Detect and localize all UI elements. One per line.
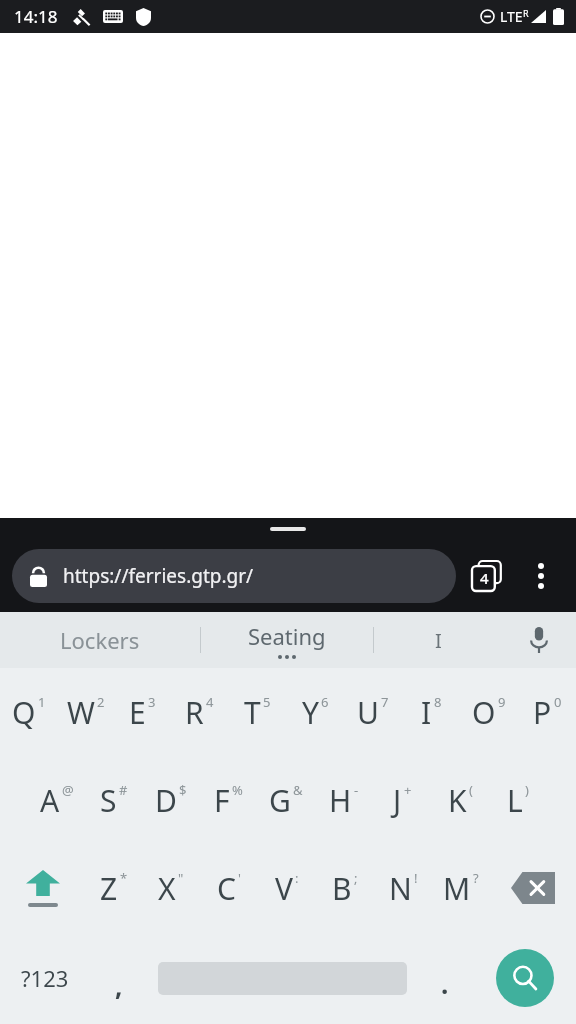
- staticText: 0: [554, 693, 562, 711]
- button[interactable]: H: [315, 756, 373, 844]
- staticText: A: [40, 780, 60, 821]
- staticText: Q: [12, 692, 36, 733]
- staticText: *: [120, 869, 128, 887]
- button[interactable]: D: [142, 756, 199, 844]
- staticText: https://ferries.gtp.gr/: [63, 563, 254, 589]
- button[interactable]: M: [432, 844, 490, 932]
- staticText: ?123: [21, 963, 69, 993]
- staticText: $: [179, 781, 187, 799]
- staticText: LTE: [500, 7, 523, 26]
- button[interactable]: U: [344, 668, 402, 756]
- staticText: X: [158, 868, 176, 909]
- button[interactable]: I: [374, 612, 502, 668]
- staticText: F: [214, 780, 230, 821]
- button[interactable]: F: [199, 756, 257, 844]
- staticText: &: [293, 781, 303, 799]
- button[interactable]: E: [114, 668, 171, 756]
- button[interactable]: J: [373, 756, 431, 844]
- button[interactable]: ?123: [0, 932, 90, 1024]
- button[interactable]: W: [57, 668, 114, 756]
- button[interactable]: .: [416, 932, 474, 1024]
- button[interactable]: Space: [148, 932, 416, 1024]
- button[interactable]: S: [85, 756, 142, 844]
- staticText: J: [393, 780, 402, 821]
- button[interactable]: Search: [474, 932, 576, 1024]
- staticText: -: [354, 781, 359, 799]
- button[interactable]: R: [171, 668, 228, 756]
- staticText: 4: [480, 568, 489, 588]
- staticText: V: [275, 868, 293, 909]
- button[interactable]: ,: [90, 932, 148, 1024]
- button[interactable]: A: [28, 756, 85, 844]
- button[interactable]: Q: [0, 668, 57, 756]
- button[interactable]: T: [228, 668, 286, 756]
- staticText: #: [119, 781, 128, 799]
- staticText: R: [523, 7, 529, 19]
- staticText: :: [295, 869, 299, 887]
- staticText: U: [357, 692, 379, 733]
- staticText: 4: [206, 693, 214, 711]
- staticText: 2: [97, 693, 105, 711]
- staticText: Seating: [248, 621, 326, 651]
- button[interactable]: C: [200, 844, 258, 932]
- button[interactable]: X: [142, 844, 200, 932]
- staticText: D: [155, 780, 177, 821]
- staticText: .: [441, 966, 449, 1001]
- staticText: G: [269, 780, 291, 821]
- staticText: +: [404, 781, 412, 799]
- button[interactable]: B: [316, 844, 374, 932]
- staticText: ;: [354, 869, 358, 887]
- staticText: Z: [100, 868, 118, 909]
- staticText: T: [244, 692, 261, 733]
- button[interactable]: Tabs: 4: [456, 545, 518, 607]
- staticText: M: [443, 868, 471, 909]
- staticText: E: [129, 692, 146, 733]
- staticText: C: [217, 868, 236, 909]
- staticText: 6: [321, 693, 329, 711]
- button[interactable]: Lockers: [0, 612, 200, 668]
- staticText: ': [238, 869, 241, 887]
- staticText: I: [435, 627, 442, 654]
- button[interactable]: G: [257, 756, 315, 844]
- button[interactable]: Y: [286, 668, 344, 756]
- other: GPS: [72, 8, 90, 26]
- staticText: K: [448, 780, 467, 821]
- button[interactable]: K: [431, 756, 489, 844]
- staticText: W: [67, 692, 95, 733]
- staticText: Y: [302, 692, 319, 733]
- button[interactable]: Backspace: [490, 844, 576, 932]
- other: Security: [136, 8, 151, 26]
- button[interactable]: N: [374, 844, 432, 932]
- button[interactable]: Seating: [201, 612, 373, 668]
- button[interactable]: V: [258, 844, 316, 932]
- staticText: 9: [498, 693, 506, 711]
- staticText: Lockers: [60, 625, 140, 655]
- button[interactable]: Shift: [0, 844, 85, 932]
- staticText: I: [421, 692, 432, 733]
- staticText: H: [329, 780, 352, 821]
- button[interactable]: L: [489, 756, 547, 844]
- button[interactable]: More options: [518, 545, 564, 607]
- staticText: R: [185, 692, 204, 733]
- staticText: %: [232, 781, 243, 799]
- button[interactable]: https://ferries.gtp.gr/: [12, 549, 456, 603]
- staticText: ?: [473, 869, 479, 887]
- staticText: ): [525, 781, 529, 799]
- button[interactable]: Z: [85, 844, 142, 932]
- staticText: P: [533, 692, 552, 733]
- button[interactable]: I: [402, 668, 460, 756]
- staticText: 14:18: [14, 5, 58, 28]
- button[interactable]: P: [518, 668, 576, 756]
- button[interactable]: Voice input: [502, 612, 576, 668]
- staticText: !: [414, 869, 418, 887]
- staticText: N: [389, 868, 412, 909]
- staticText: O: [472, 692, 496, 733]
- staticText: ": [178, 869, 184, 887]
- staticText: B: [332, 868, 352, 909]
- staticText: 8: [434, 693, 442, 711]
- staticText: 3: [148, 693, 156, 711]
- staticText: (: [469, 781, 473, 799]
- staticText: L: [507, 780, 523, 821]
- button[interactable]: O: [460, 668, 518, 756]
- staticText: 1: [38, 693, 46, 711]
